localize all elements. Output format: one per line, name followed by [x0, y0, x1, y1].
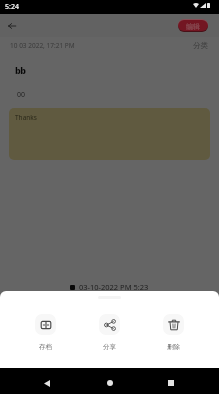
staticText: 存档 — [39, 343, 52, 351]
staticText: 分享 — [103, 343, 116, 351]
button[interactable]: 删除 — [155, 314, 192, 351]
button[interactable]: Back — [3, 17, 21, 35]
staticText: 编辑 — [186, 22, 200, 31]
staticText: 10 03 2022, 17:21 PM — [10, 41, 75, 50]
staticText: 5:24 — [5, 2, 19, 12]
staticText: 删除 — [167, 343, 180, 351]
staticText: bb — [15, 64, 26, 76]
button[interactable]: 编辑 — [178, 20, 208, 32]
button[interactable]: Home — [98, 371, 122, 394]
button[interactable]: 存档 — [27, 314, 64, 351]
staticText: 03-10-2022 PM 5:23 — [79, 282, 149, 292]
button[interactable]: Recents — [159, 371, 183, 394]
staticText: Thanks — [15, 113, 37, 122]
button[interactable]: 分享 — [91, 314, 128, 351]
staticText: 00 — [17, 90, 26, 100]
staticText: 分类 — [193, 41, 208, 50]
button[interactable]: Back — [35, 371, 59, 394]
